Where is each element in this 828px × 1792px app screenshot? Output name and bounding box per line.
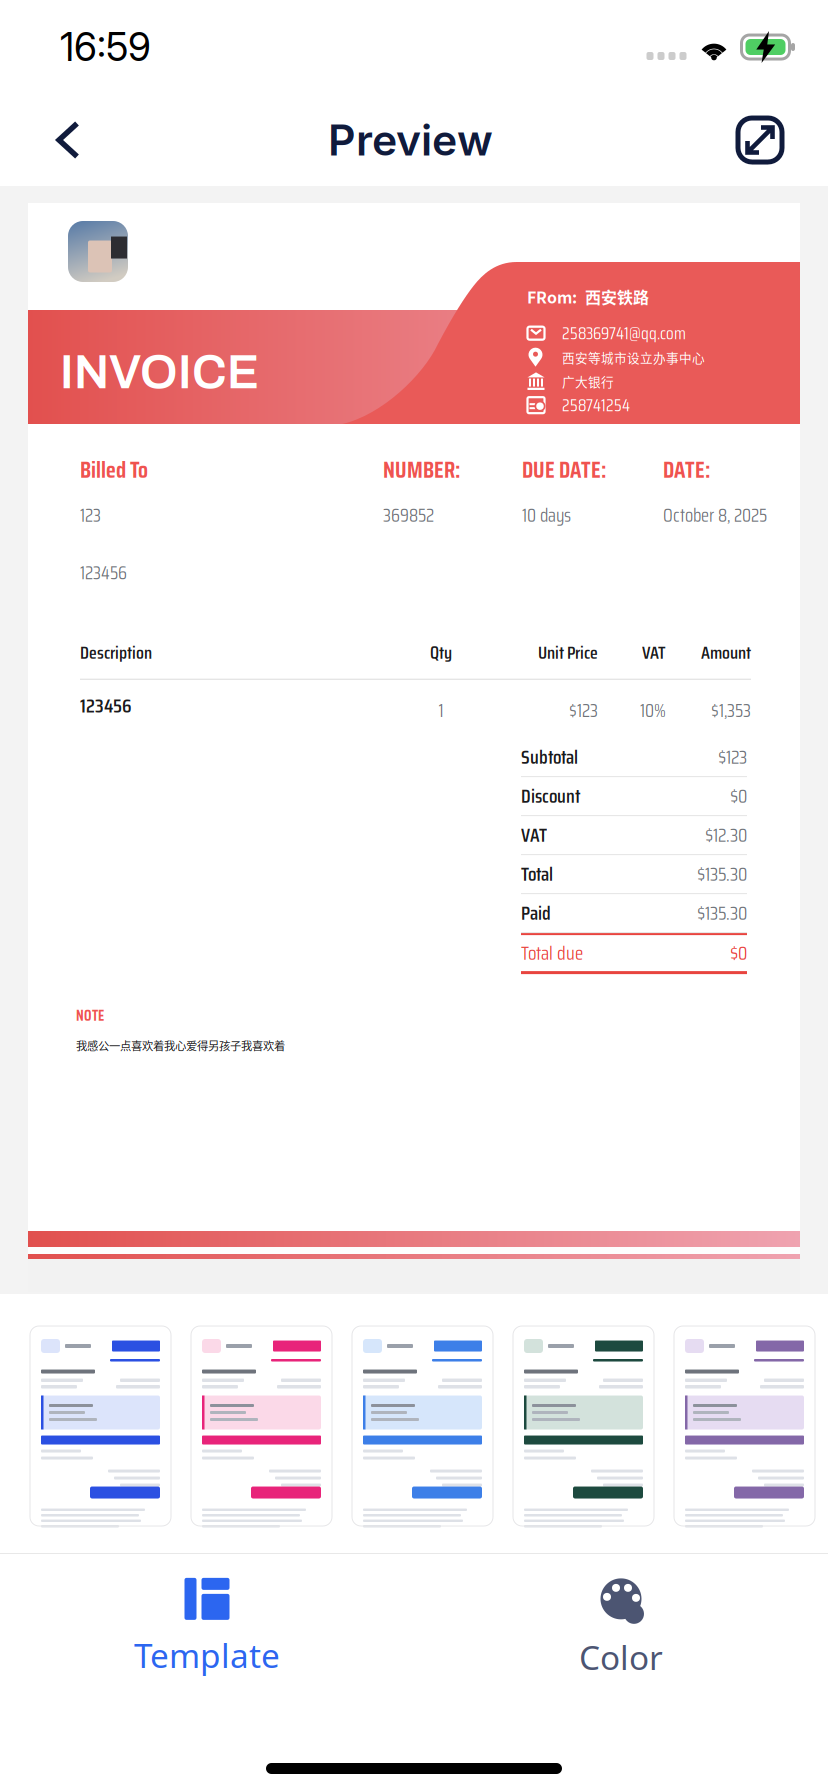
staticText: 369852 (383, 501, 434, 530)
staticText: 我感公一点喜欢着我心爱得另孩子我喜欢着 (76, 1037, 285, 1054)
staticText: NOTE (76, 1004, 104, 1027)
staticText: 10 days (522, 501, 571, 530)
staticText: $123 (718, 742, 747, 772)
staticText: 258369741@qq.com (562, 319, 686, 347)
staticText: 广大银行 (562, 372, 614, 390)
staticText: Discount (521, 781, 581, 811)
staticText: Preview (328, 114, 493, 166)
staticText: Color (579, 1635, 663, 1679)
staticText: 16:59 (60, 24, 151, 70)
staticText: Subtotal (521, 742, 578, 772)
staticText: $135.30 (697, 898, 747, 928)
staticText: $0 (730, 938, 747, 968)
staticText: $1,353 (711, 696, 751, 725)
staticText: DATE: (663, 452, 710, 488)
staticText: Unit Price (538, 638, 598, 667)
staticText: 123 (80, 501, 101, 530)
staticText: October 8, 2025 (663, 501, 767, 530)
staticText: Paid (521, 898, 551, 928)
staticText: INVOICE (60, 346, 259, 398)
staticText: 10% (640, 696, 666, 725)
staticText: 西安等城市设立办事中心 (562, 348, 705, 366)
button[interactable] (191, 1326, 332, 1526)
button[interactable]: Expand (722, 102, 802, 178)
staticText: DUE DATE: (522, 452, 606, 488)
button[interactable] (30, 1326, 171, 1526)
staticText: NUMBER: (383, 452, 460, 488)
staticText: $123 (569, 696, 598, 725)
staticText: Qty (430, 638, 452, 667)
staticText: VAT (521, 820, 547, 850)
button[interactable] (352, 1326, 493, 1526)
staticText: 123456 (80, 690, 132, 721)
staticText: 123456 (80, 558, 127, 587)
staticText: 1 (438, 696, 443, 725)
staticText: Template (134, 1633, 280, 1677)
staticText: FRom: 西安铁路 (527, 285, 649, 308)
staticText: $135.30 (697, 859, 747, 889)
button[interactable]: Template (0, 1562, 414, 1693)
staticText: 258741254 (562, 391, 630, 419)
button[interactable]: Color (414, 1560, 828, 1695)
staticText: $0 (730, 781, 747, 811)
staticText: Description (80, 638, 152, 667)
button[interactable] (513, 1326, 654, 1526)
button[interactable] (674, 1326, 815, 1526)
staticText: $12.30 (705, 820, 747, 850)
staticText: Total (521, 859, 553, 889)
staticText: Billed To (80, 452, 148, 488)
staticText: VAT (642, 638, 666, 667)
staticText: Total due (521, 938, 583, 968)
button[interactable]: Back (26, 101, 99, 178)
staticText: Amount (701, 638, 751, 667)
